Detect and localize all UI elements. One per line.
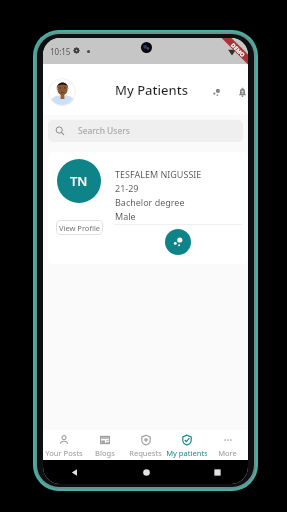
staticText: Male — [115, 210, 136, 222]
staticText: My patients — [166, 448, 207, 458]
button[interactable]: Profile — [48, 78, 76, 106]
staticText: My Patients — [115, 81, 188, 99]
button[interactable]: Filter — [207, 83, 225, 101]
staticText: Bachelor degree — [115, 196, 185, 208]
staticText: DEMO — [230, 41, 247, 58]
button[interactable]: Your Posts — [43, 430, 84, 460]
staticText: TESFALEM NIGUSSIE — [115, 168, 202, 180]
button[interactable]: Home — [139, 465, 153, 479]
button[interactable]: Search Users — [48, 120, 243, 142]
button[interactable]: View Profile — [56, 220, 103, 235]
button[interactable]: More — [207, 430, 248, 460]
button[interactable]: More actions — [165, 229, 191, 255]
staticText: Your Posts — [45, 448, 83, 458]
button[interactable]: Back — [67, 465, 81, 479]
staticText: More — [218, 448, 237, 458]
staticText: 21-29 — [115, 182, 139, 194]
button[interactable]: Notifications — [233, 83, 248, 101]
staticText: Blogs — [95, 448, 115, 458]
button[interactable]: My patients — [166, 430, 207, 460]
button[interactable]: Recent apps — [210, 465, 224, 479]
button[interactable]: TN — [48, 152, 248, 264]
staticText: Search Users — [78, 125, 130, 137]
staticText: 10:15 — [50, 46, 71, 57]
button[interactable]: Requests — [125, 430, 166, 460]
staticText: View Profile — [59, 223, 101, 233]
staticText: Requests — [129, 448, 162, 458]
staticText: TN — [70, 172, 88, 190]
button[interactable]: Blogs — [84, 430, 125, 460]
